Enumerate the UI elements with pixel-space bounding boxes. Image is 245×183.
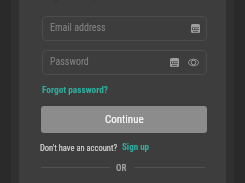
staticText: Sign up bbox=[122, 142, 150, 153]
staticText: Forgot password? bbox=[42, 84, 108, 95]
staticText: Continue bbox=[105, 113, 144, 126]
staticText: OR bbox=[116, 163, 127, 174]
staticText: Email address bbox=[50, 22, 106, 34]
staticText: Password bbox=[50, 56, 89, 68]
staticText: Don't have an account? bbox=[40, 143, 118, 153]
